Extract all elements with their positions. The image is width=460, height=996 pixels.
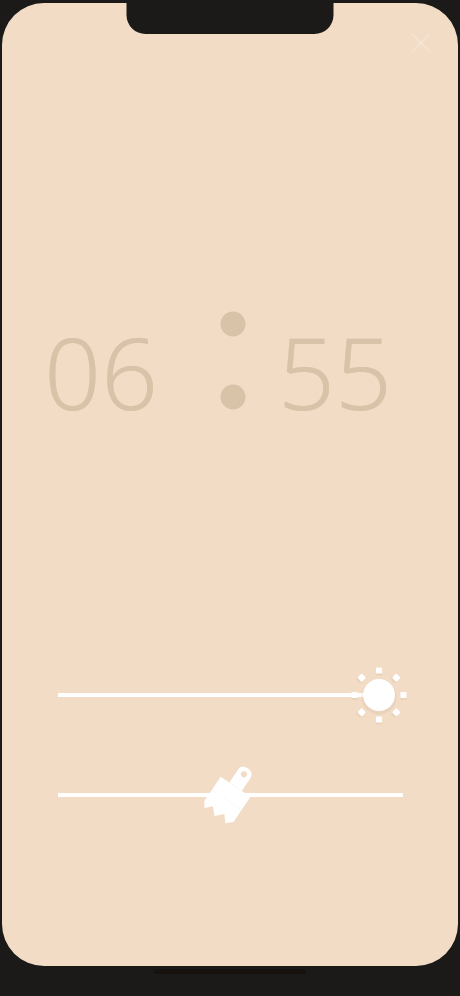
staticText: 06 (44, 303, 159, 439)
button[interactable]: Clean (40, 762, 420, 828)
staticText: 55 (278, 303, 393, 439)
button[interactable]: Brightness (40, 662, 420, 728)
